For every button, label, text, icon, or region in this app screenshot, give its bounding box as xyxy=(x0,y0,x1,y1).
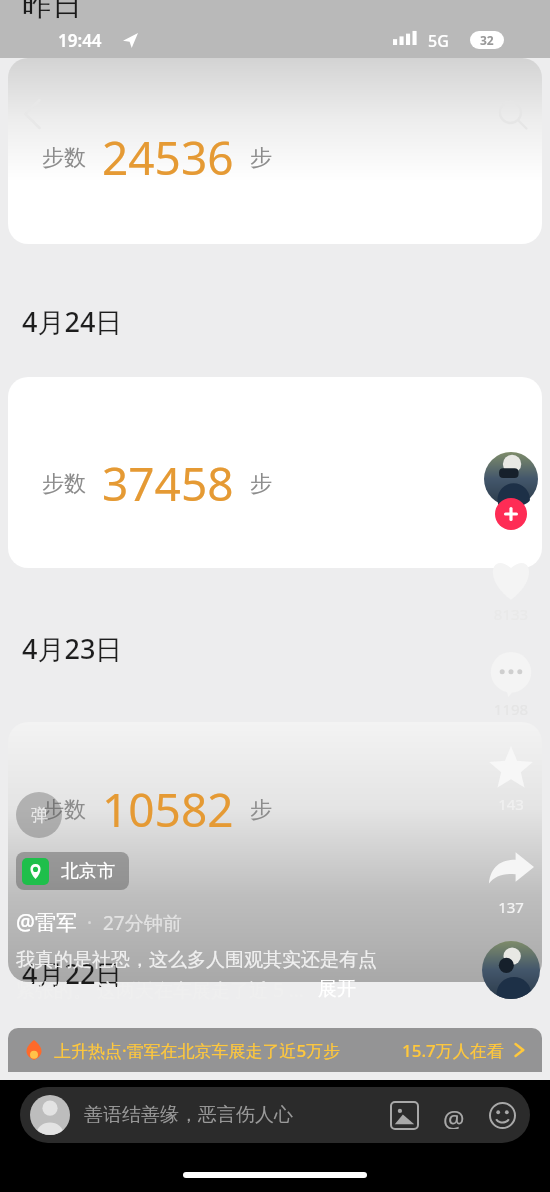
button[interactable]: Mention xyxy=(440,1102,467,1129)
staticText: 15.7万人在看 xyxy=(402,1039,504,1062)
staticText: 27分钟前 xyxy=(103,910,182,936)
button[interactable] xyxy=(8,377,542,568)
button[interactable]: 善语结善缘，恶言伤人心 xyxy=(30,1087,520,1143)
button[interactable]: Share xyxy=(482,838,540,896)
button[interactable] xyxy=(8,722,542,982)
staticText: 昨日 xyxy=(22,0,82,24)
staticText: 步数 xyxy=(42,144,86,172)
button[interactable]: Like xyxy=(482,550,540,608)
button[interactable]: 上升热点·雷军在北京车展走了近5万步 xyxy=(24,1028,526,1072)
button[interactable]: Search xyxy=(497,99,529,131)
button[interactable]: Favorite xyxy=(482,740,540,798)
staticText: 紧张的。 这两天在车展走了近 5 ... xyxy=(16,977,304,1003)
staticText: · xyxy=(87,910,93,936)
button[interactable]: Music xyxy=(482,941,540,999)
button[interactable]: 北京市 xyxy=(22,852,123,890)
staticText: 弹 xyxy=(31,805,48,826)
button[interactable]: @雷军 xyxy=(16,908,182,937)
staticText: 19:44 xyxy=(58,29,102,52)
staticText: 上升热点·雷军在北京车展走了近5万步 xyxy=(54,1039,341,1062)
staticText: 4月23日 xyxy=(22,630,123,667)
button[interactable]: Image xyxy=(391,1102,418,1129)
button[interactable]: 展开 xyxy=(318,977,356,1001)
button[interactable]: Back xyxy=(22,98,44,130)
staticText: 5G xyxy=(428,30,449,52)
staticText: 步数 xyxy=(42,470,86,498)
staticText: 10582 xyxy=(102,778,234,841)
staticText: @雷军 xyxy=(16,908,77,937)
staticText: 24536 xyxy=(102,126,234,189)
staticText: 步 xyxy=(250,796,272,824)
button[interactable]: Follow xyxy=(495,498,527,530)
button[interactable]: Comment xyxy=(482,645,540,703)
staticText: 北京市 xyxy=(61,860,115,883)
button[interactable] xyxy=(8,58,542,244)
staticText: 步 xyxy=(250,144,272,172)
staticText: 137 xyxy=(482,897,540,917)
staticText: 4月24日 xyxy=(22,303,123,340)
button[interactable]: 弹 xyxy=(16,792,62,838)
button[interactable] xyxy=(482,450,540,508)
staticText: @ xyxy=(443,1102,465,1129)
button[interactable]: Emoji xyxy=(489,1102,516,1129)
staticText: 32 xyxy=(480,32,494,48)
staticText: 我真的是社恐，这么多人围观其实还是有点 xyxy=(16,948,377,972)
staticText: 步数 xyxy=(42,796,86,824)
staticText: 步 xyxy=(250,470,272,498)
staticText: 37458 xyxy=(102,452,234,515)
staticText: 4月22日 xyxy=(22,955,123,992)
staticText: 善语结善缘，恶言伤人心 xyxy=(84,1103,293,1127)
